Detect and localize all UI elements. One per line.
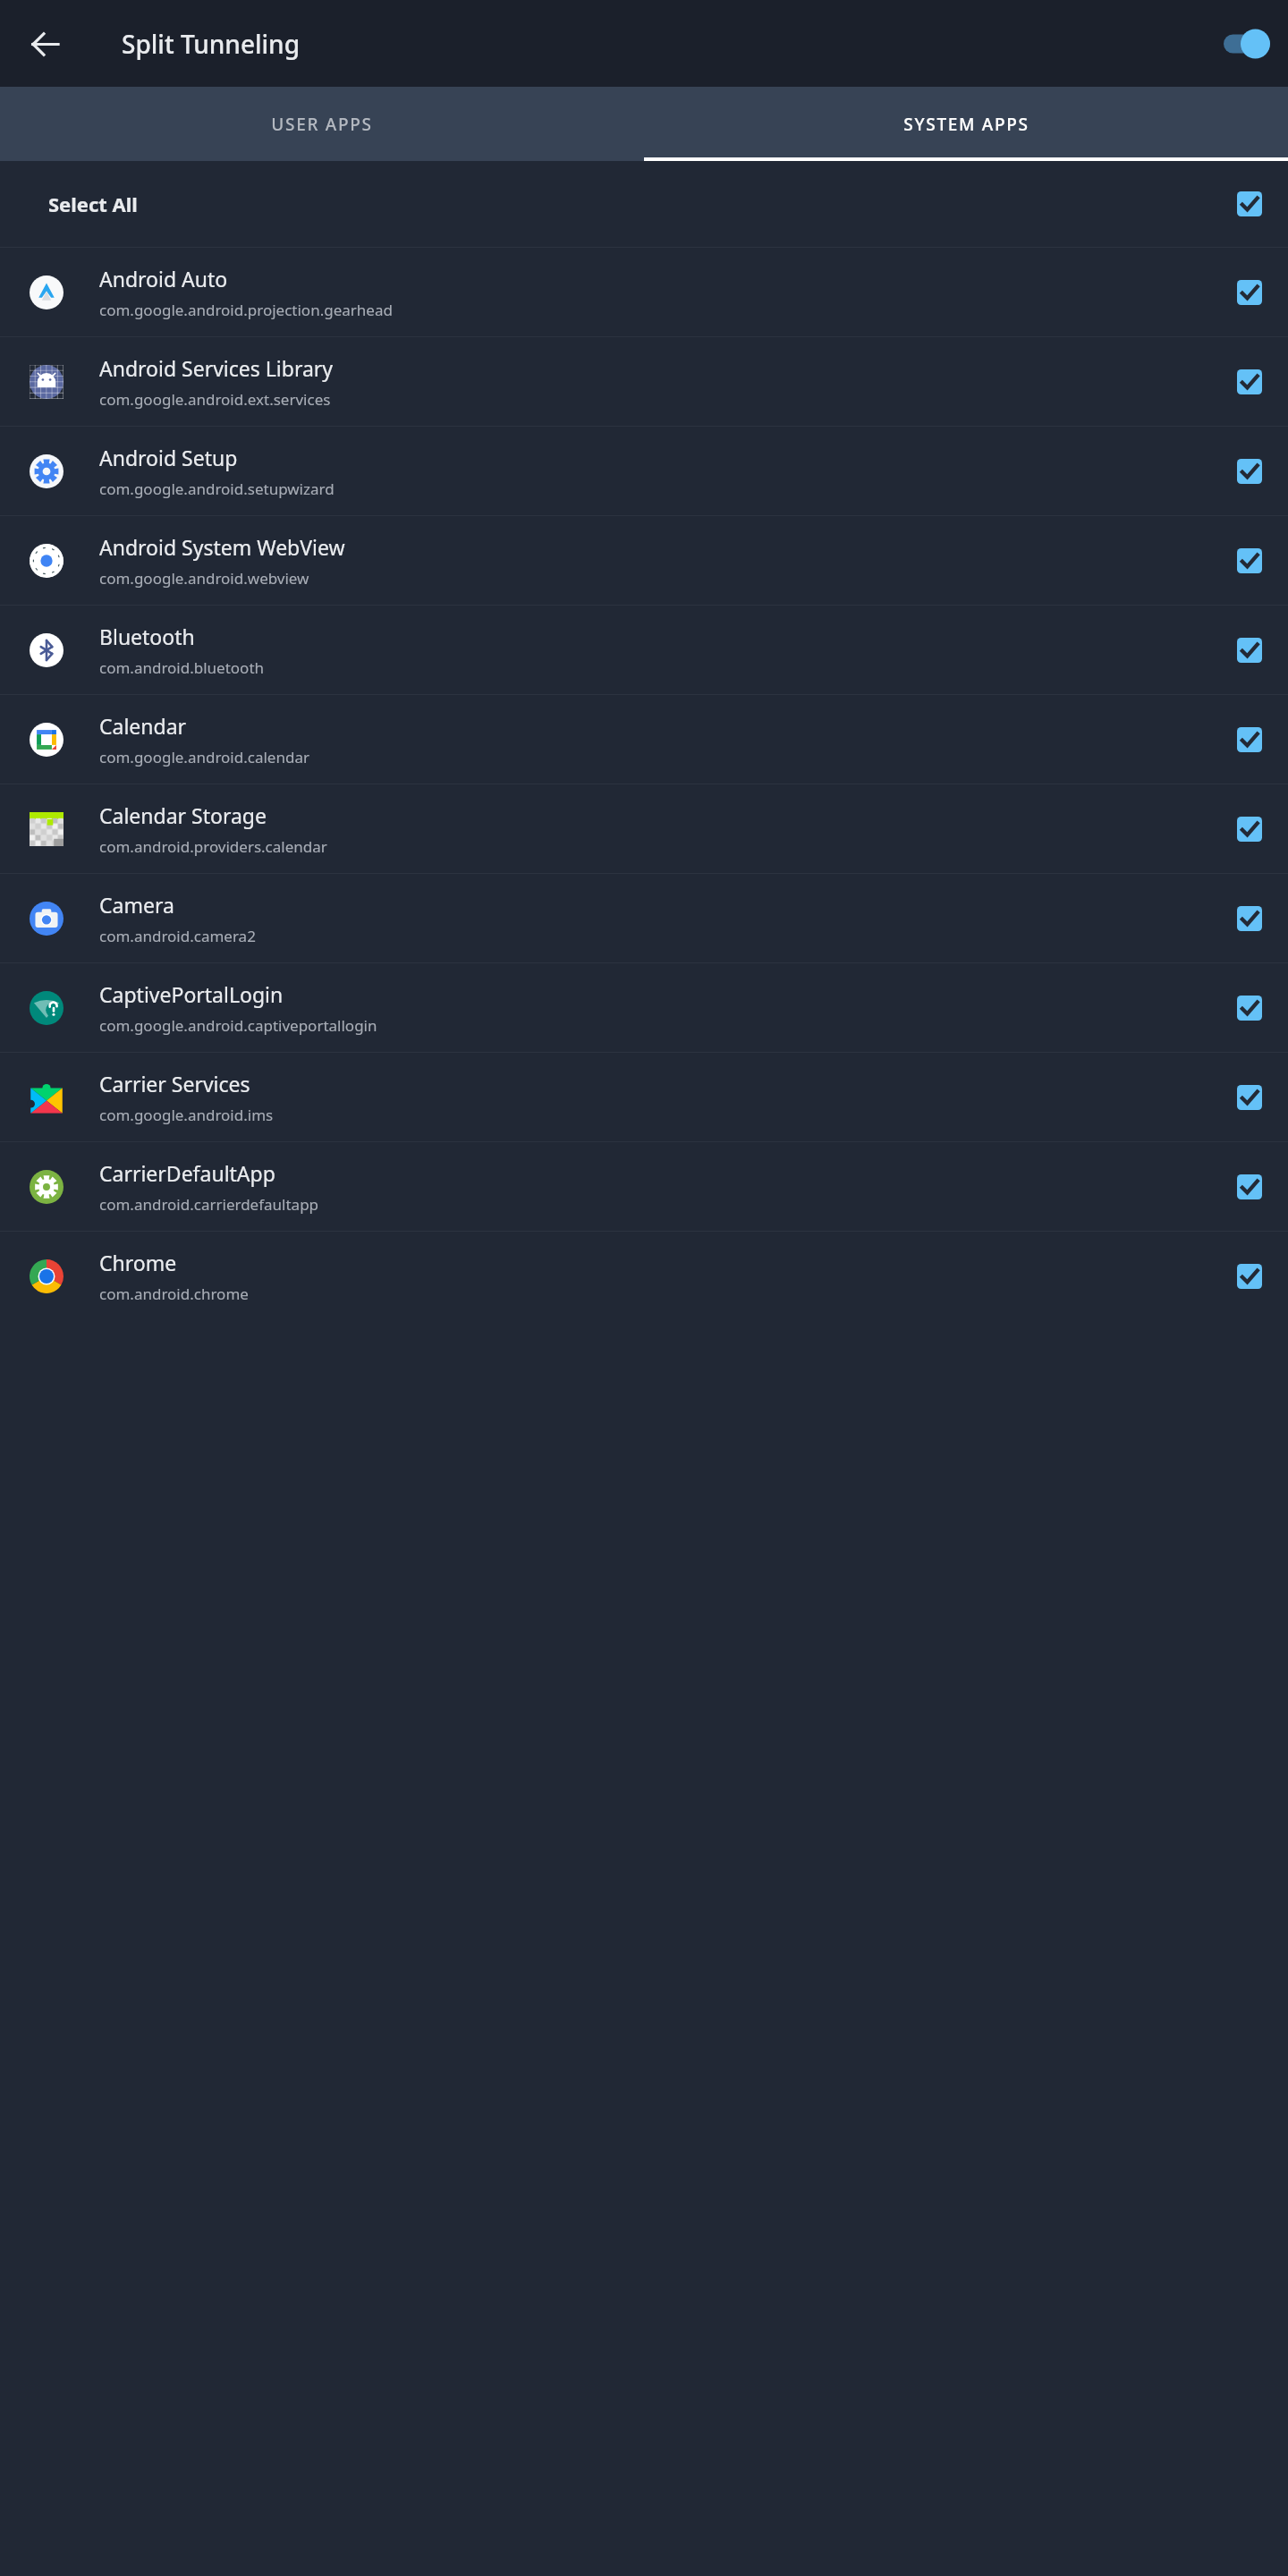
staticText: CaptivePortalLogin (99, 980, 284, 1008)
staticText: Split Tunneling (122, 27, 300, 61)
staticText: USER APPS (271, 113, 373, 136)
button[interactable]: CaptivePortalLogin (0, 963, 1288, 1052)
staticText: Bluetooth (99, 623, 195, 650)
button[interactable]: Android Auto (0, 248, 1288, 336)
staticText: Camera (99, 891, 174, 919)
staticText: com.google.android.setupwizard (99, 479, 335, 499)
staticText: Chrome (99, 1249, 177, 1276)
staticText: Android Services Library (99, 354, 334, 382)
staticText: SYSTEM APPS (903, 113, 1030, 136)
staticText: Select All (48, 191, 138, 217)
staticText: Carrier Services (99, 1070, 250, 1097)
button[interactable]: Back (20, 19, 70, 69)
button[interactable]: Carrier Services (0, 1053, 1288, 1141)
button[interactable]: Calendar Storage (0, 784, 1288, 873)
button[interactable]: Enable split tunneling (1213, 22, 1270, 65)
button[interactable]: Calendar (0, 695, 1288, 784)
button[interactable]: Android Setup (0, 427, 1288, 515)
staticText: com.google.android.projection.gearhead (99, 300, 393, 320)
button[interactable]: Chrome (0, 1232, 1288, 1320)
staticText: com.android.camera2 (99, 926, 256, 946)
staticText: com.google.android.ext.services (99, 389, 331, 410)
button[interactable]: Bluetooth (0, 606, 1288, 694)
staticText: CarrierDefaultApp (99, 1159, 275, 1187)
staticText: com.android.chrome (99, 1284, 249, 1304)
staticText: Calendar Storage (99, 801, 267, 829)
staticText: com.google.android.captiveportallogin (99, 1015, 377, 1036)
staticText: Calendar (99, 712, 187, 740)
button[interactable]: Camera (0, 874, 1288, 962)
staticText: com.google.android.calendar (99, 747, 309, 767)
button[interactable]: Android System WebView (0, 516, 1288, 605)
staticText: com.android.providers.calendar (99, 836, 327, 857)
button[interactable]: CarrierDefaultApp (0, 1142, 1288, 1231)
staticText: com.google.android.ims (99, 1105, 274, 1125)
staticText: com.android.carrierdefaultapp (99, 1194, 319, 1215)
staticText: Android System WebView (99, 533, 345, 561)
staticText: com.google.android.webview (99, 568, 309, 589)
button[interactable]: SYSTEM APPS (644, 87, 1288, 161)
button[interactable]: USER APPS (0, 87, 644, 161)
button[interactable]: Select All (0, 161, 1288, 247)
button[interactable]: Android Services Library (0, 337, 1288, 426)
staticText: com.android.bluetooth (99, 657, 265, 678)
staticText: Android Setup (99, 444, 238, 471)
staticText: Android Auto (99, 265, 228, 292)
